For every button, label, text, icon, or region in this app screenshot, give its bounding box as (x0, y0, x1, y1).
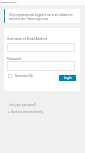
staticText: Only registered and logged in users are … (9, 13, 78, 21)
button[interactable]: Lost your password? (9, 103, 36, 107)
button[interactable]: Log In (59, 75, 76, 81)
staticText: Username or Email Address (7, 37, 48, 41)
button[interactable] (7, 43, 75, 52)
staticText: Log In (64, 76, 72, 80)
button[interactable]: Lamanna Family (1, 1, 17, 4)
button[interactable] (7, 61, 75, 71)
button[interactable]: Remember Me (8, 74, 34, 78)
staticText: Remember Me (15, 74, 34, 78)
button[interactable]: ← Back to Lamanna Family (8, 110, 43, 114)
staticText: Password (7, 57, 21, 61)
